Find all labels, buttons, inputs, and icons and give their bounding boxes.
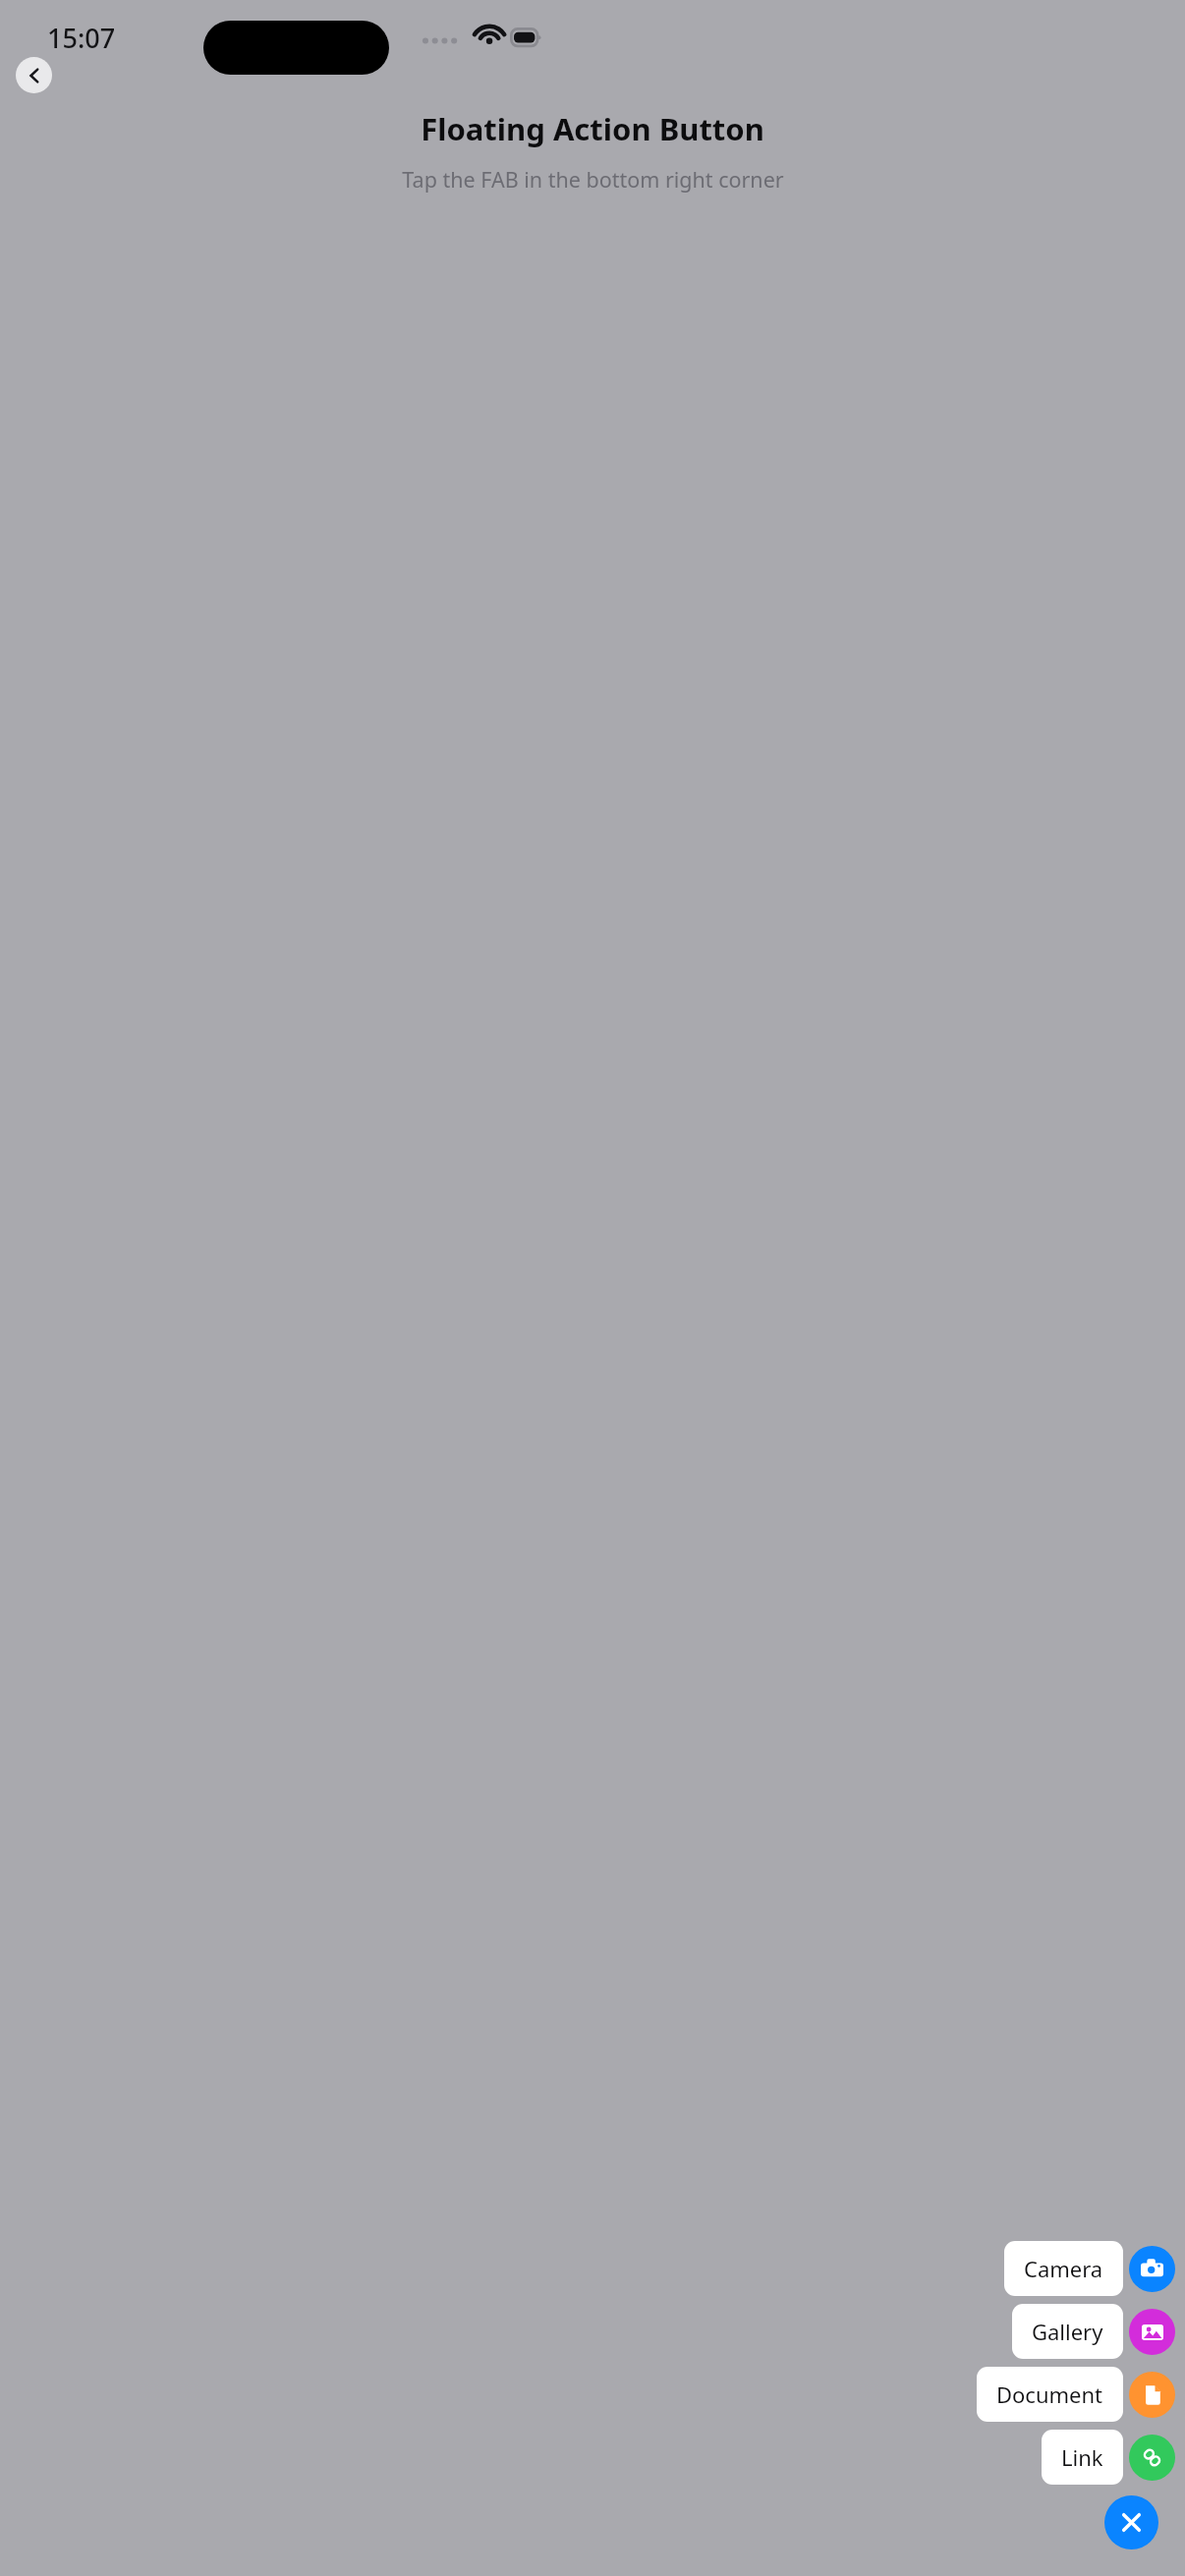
staticText: Camera [1024,2254,1103,2283]
staticText: Gallery [1032,2317,1103,2346]
button[interactable]: Gallery [1012,2304,1123,2359]
button[interactable]: Camera [1004,2241,1123,2296]
staticText: Tap the FAB in the bottom right corner [402,165,784,194]
staticText: 15:07 [47,20,116,56]
button[interactable]: Link [1042,2430,1123,2485]
button[interactable]: Back [16,57,52,93]
button[interactable]: Document [1129,2372,1175,2418]
button[interactable]: Gallery [1129,2309,1175,2355]
staticText: Document [996,2380,1103,2409]
button[interactable]: Camera [1129,2246,1175,2292]
button[interactable]: Link [1129,2435,1175,2481]
button[interactable]: Close menu [1104,2495,1158,2549]
staticText: Floating Action Button [421,108,764,149]
staticText: Link [1061,2442,1103,2472]
button[interactable]: Document [977,2367,1123,2422]
